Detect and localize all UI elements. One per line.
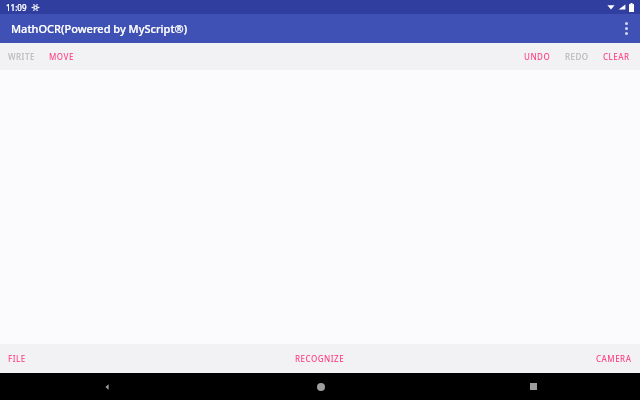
staticText: FILE — [8, 353, 26, 364]
button[interactable]: Recent apps — [427, 373, 640, 400]
button[interactable]: REDO — [559, 43, 597, 70]
staticText: REDO — [565, 51, 589, 62]
staticText: CAMERA — [596, 353, 632, 364]
button[interactable]: WRITE — [0, 43, 43, 70]
button[interactable]: CLEAR — [597, 43, 640, 70]
staticText: MathOCR(Powered by MyScript®) — [11, 21, 188, 36]
button[interactable]: UNDO — [516, 43, 559, 70]
staticText: WRITE — [8, 51, 35, 62]
staticText: MOVE — [49, 51, 74, 62]
button[interactable]: CAMERA — [588, 344, 640, 373]
staticText: UNDO — [524, 51, 551, 62]
button[interactable]: Back — [0, 373, 214, 400]
button[interactable]: Home — [214, 373, 427, 400]
staticText: 11:09 — [6, 2, 27, 13]
button[interactable]: FILE — [0, 344, 34, 373]
staticText: RECOGNIZE — [295, 353, 345, 364]
button[interactable]: More options — [612, 14, 640, 43]
staticText: CLEAR — [603, 51, 630, 62]
button[interactable]: RECOGNIZE — [285, 344, 355, 373]
button[interactable]: MOVE — [43, 43, 82, 70]
